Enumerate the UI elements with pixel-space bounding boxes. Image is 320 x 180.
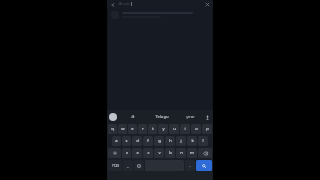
staticText: v (158, 150, 161, 156)
staticText: f (147, 138, 149, 144)
button[interactable]: x (132, 148, 142, 158)
button[interactable]: i (180, 124, 190, 134)
staticText: h (169, 138, 172, 144)
button[interactable]: Voice input (203, 113, 211, 121)
button[interactable]: Telugu (145, 114, 178, 120)
staticText: a (115, 138, 118, 144)
button[interactable]: y (158, 124, 168, 134)
button[interactable]: t (148, 124, 157, 134)
staticText: t (152, 126, 154, 132)
staticText: i (184, 126, 186, 132)
button[interactable]: , (123, 160, 133, 171)
button[interactable]: k (187, 136, 197, 146)
button[interactable]: h (165, 136, 175, 146)
staticText: w (121, 126, 125, 132)
button[interactable]: b (165, 148, 175, 158)
button[interactable]: Back (109, 1, 116, 8)
button[interactable]: q (108, 124, 117, 134)
button[interactable]: Google Assistant (109, 113, 117, 121)
staticText: e (131, 126, 134, 132)
button[interactable]: p (202, 124, 212, 134)
button[interactable]: g (154, 136, 164, 146)
staticText: g (158, 138, 161, 144)
button[interactable]: Search (196, 160, 212, 171)
button[interactable]: n (176, 148, 186, 158)
staticText: c (147, 150, 150, 156)
button[interactable]: c (143, 148, 153, 158)
button[interactable]: Emoji (134, 160, 144, 171)
staticText: d (136, 138, 139, 144)
button[interactable] (108, 8, 212, 22)
staticText: l (202, 138, 204, 144)
staticText: n (180, 150, 183, 156)
button[interactable]: j (176, 136, 186, 146)
staticText: j (180, 138, 182, 144)
button[interactable]: Backspace (198, 148, 212, 158)
staticText: m (190, 150, 194, 156)
button[interactable]: . (185, 160, 195, 171)
staticText: u (173, 126, 176, 132)
button[interactable]: తె (120, 114, 145, 120)
staticText: q (111, 126, 114, 132)
staticText: తె (131, 114, 135, 120)
button[interactable]: w (118, 124, 127, 134)
button[interactable]: e (128, 124, 137, 134)
button[interactable]: ?123 (108, 160, 122, 171)
staticText: z (126, 150, 128, 156)
button[interactable]: o (191, 124, 201, 134)
staticText: year (186, 114, 195, 120)
staticText: . (189, 163, 191, 169)
button[interactable]: Clear (204, 1, 211, 8)
button[interactable]: u (169, 124, 179, 134)
staticText: o (195, 126, 198, 132)
staticText: b (169, 150, 172, 156)
button[interactable]: z (122, 148, 131, 158)
button[interactable]: l (198, 136, 208, 146)
staticText: Telugu (155, 114, 169, 120)
button[interactable]: r (138, 124, 147, 134)
button[interactable]: s (122, 136, 131, 146)
button[interactable]: m (187, 148, 197, 158)
staticText: తెలుగు (118, 1, 130, 7)
staticText: p (206, 126, 209, 132)
button[interactable]: year (178, 114, 203, 120)
staticText: , (127, 163, 129, 169)
button[interactable]: v (154, 148, 164, 158)
staticText: x (136, 150, 139, 156)
staticText: ?123 (112, 164, 119, 168)
button[interactable]: d (132, 136, 142, 146)
staticText: y (162, 126, 165, 132)
button[interactable]: f (143, 136, 153, 146)
staticText: s (125, 138, 128, 144)
button[interactable]: a (112, 136, 121, 146)
staticText: r (142, 126, 144, 132)
button[interactable]: Shift (108, 148, 121, 158)
staticText: k (191, 138, 194, 144)
